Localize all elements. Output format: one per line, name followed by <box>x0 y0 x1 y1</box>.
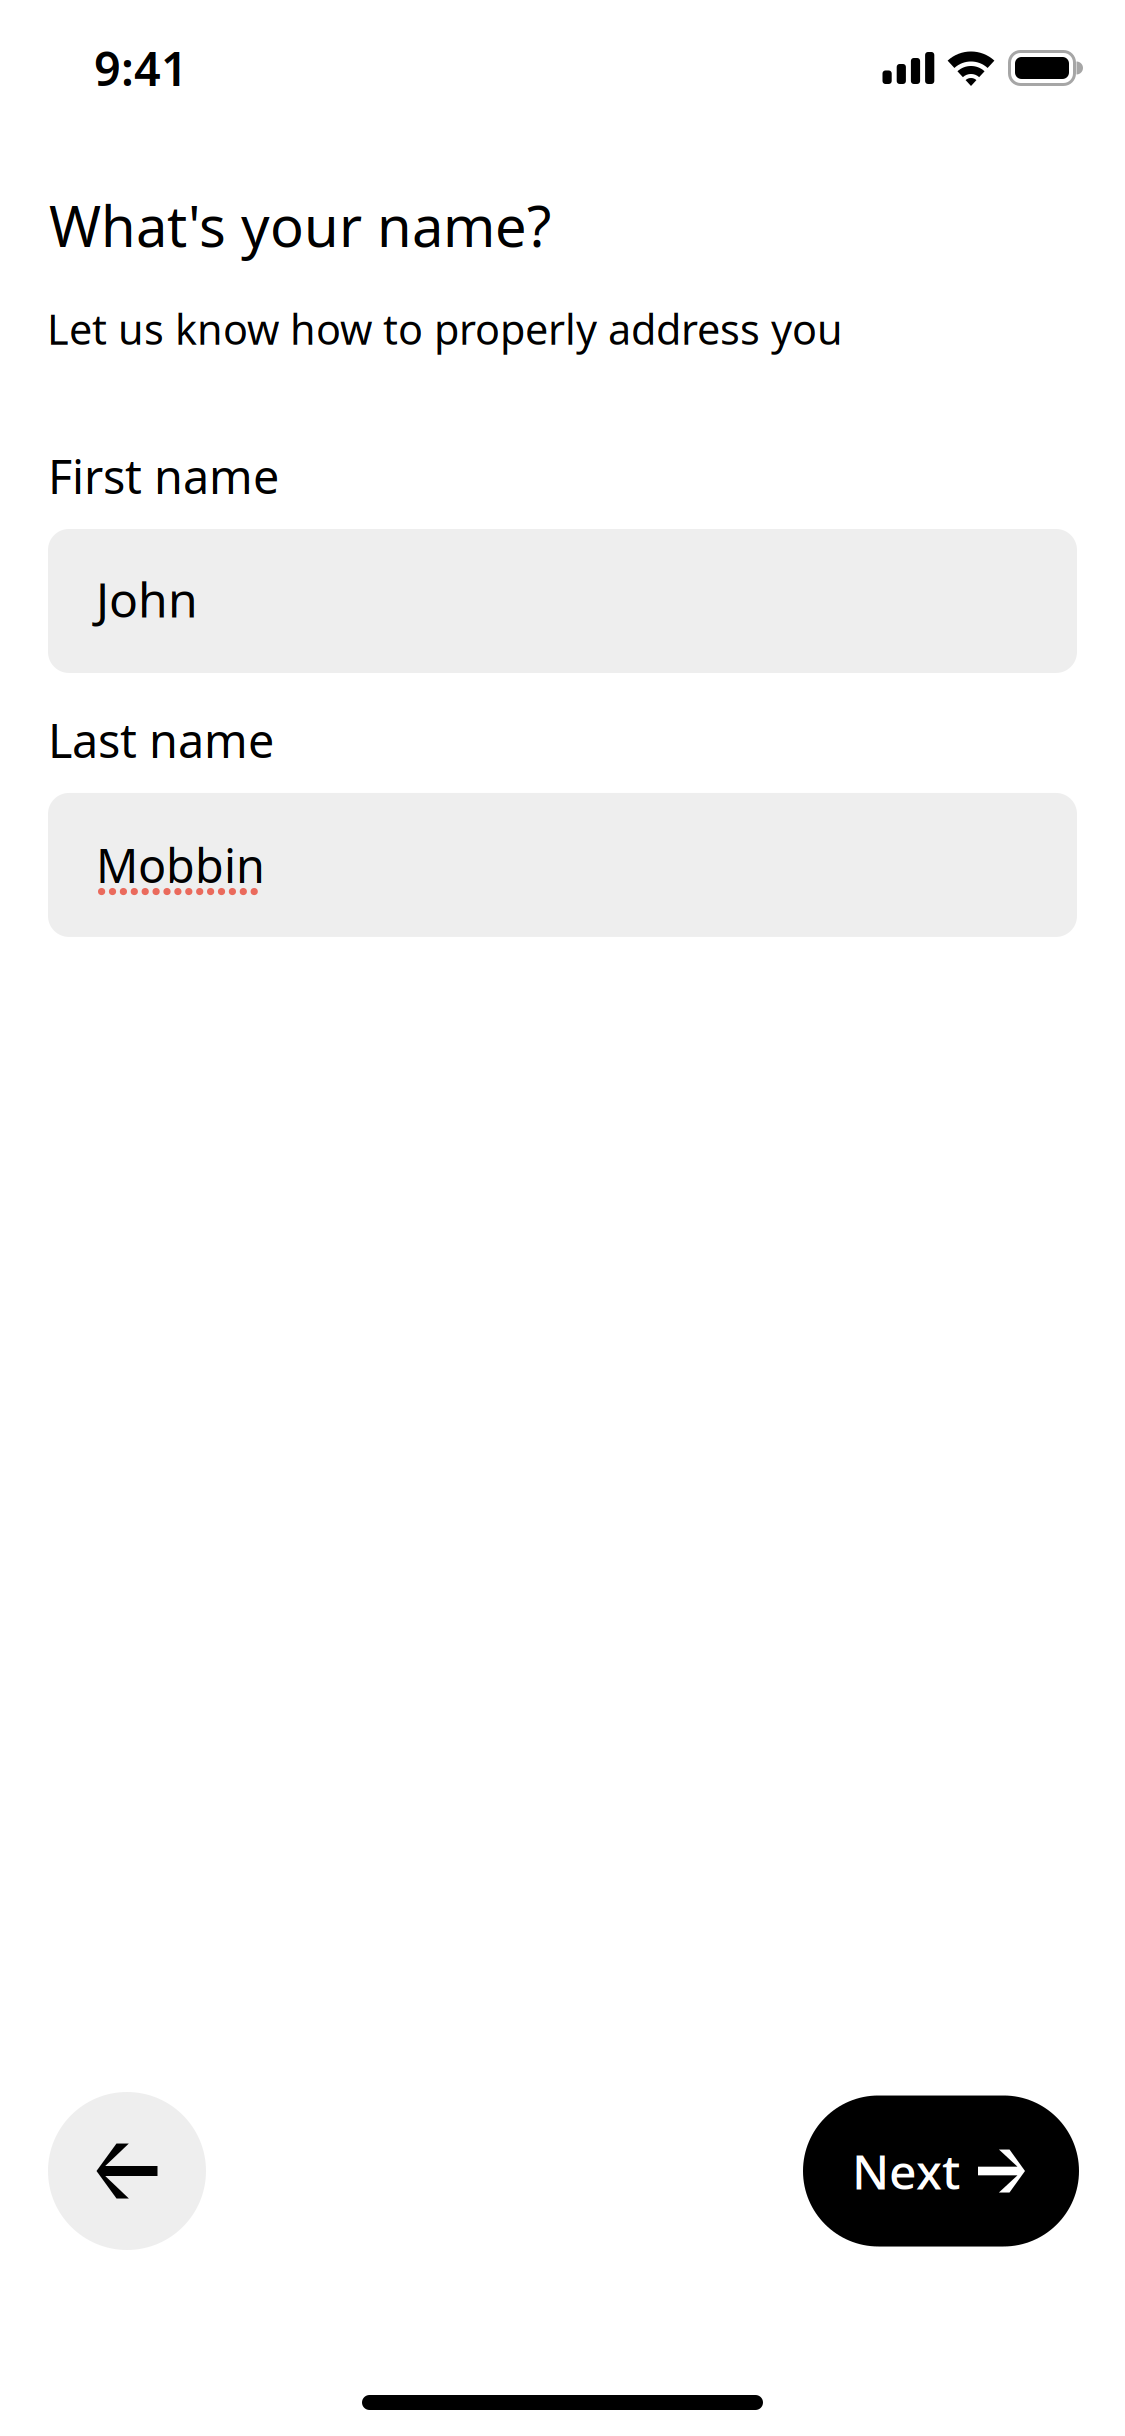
button[interactable]: Back <box>48 2092 206 2250</box>
staticText: Let us know how to properly address you <box>47 301 843 356</box>
staticText: Next <box>852 2139 960 2203</box>
staticText: John <box>96 567 198 631</box>
staticText: First name <box>48 445 279 507</box>
button[interactable]: John <box>48 529 1077 673</box>
staticText: What's your name? <box>49 188 551 262</box>
staticText: 9:41 <box>94 37 188 99</box>
button[interactable]: Next <box>803 2095 1079 2246</box>
staticText: Last name <box>48 709 274 771</box>
button[interactable]: Mobbin <box>48 793 1077 937</box>
staticText: Mobbin <box>96 834 265 896</box>
